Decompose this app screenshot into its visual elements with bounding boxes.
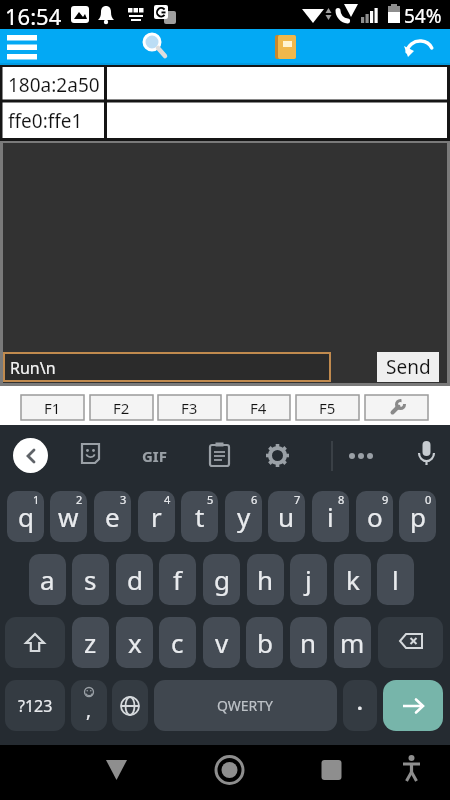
staticText: i xyxy=(327,499,334,534)
button[interactable]: d xyxy=(116,554,153,605)
button[interactable]: e xyxy=(94,491,131,542)
button[interactable]: a xyxy=(29,554,66,605)
button[interactable]: m xyxy=(334,617,371,668)
staticText: g xyxy=(214,562,230,597)
staticText: n xyxy=(300,625,317,660)
button[interactable]: j xyxy=(290,554,327,605)
button[interactable] xyxy=(365,395,428,420)
button[interactable] xyxy=(309,746,354,791)
staticText: , xyxy=(86,697,92,723)
button[interactable]: ?123 xyxy=(5,680,65,731)
staticText: q xyxy=(18,499,34,534)
staticText: j xyxy=(305,562,312,597)
staticText: x xyxy=(128,625,142,660)
button[interactable] xyxy=(410,437,443,470)
button[interactable] xyxy=(94,746,139,791)
button[interactable]: l xyxy=(377,554,414,605)
button[interactable]: Send xyxy=(377,352,439,382)
staticText: QWERTY xyxy=(217,696,274,715)
button[interactable]: h xyxy=(247,554,284,605)
button[interactable]: t xyxy=(181,491,218,542)
button[interactable]: F1 xyxy=(21,395,84,420)
staticText: 5 xyxy=(207,492,214,507)
staticText: 0 xyxy=(425,492,432,507)
button[interactable]: x xyxy=(116,617,153,668)
staticText: . xyxy=(357,689,363,716)
staticText: t xyxy=(195,499,205,534)
button[interactable]: QWERTY xyxy=(154,680,337,731)
staticText: y xyxy=(237,499,251,534)
button[interactable]: q xyxy=(7,491,44,542)
button[interactable] xyxy=(344,439,377,472)
button[interactable]: F2 xyxy=(90,395,153,420)
button[interactable]: o xyxy=(356,491,393,542)
staticText: ?123 xyxy=(18,695,53,717)
staticText: 16:54 xyxy=(5,1,62,30)
staticText: o xyxy=(367,499,383,534)
button[interactable]: Run\n xyxy=(4,353,330,381)
button[interactable]: c xyxy=(159,617,196,668)
button[interactable] xyxy=(13,438,48,473)
staticText: F5 xyxy=(319,398,336,418)
staticText: b xyxy=(257,625,273,660)
button[interactable]: w xyxy=(50,491,87,542)
button[interactable] xyxy=(74,439,107,472)
button[interactable]: p xyxy=(399,491,436,542)
button[interactable] xyxy=(203,439,236,472)
button[interactable]: F5 xyxy=(296,395,359,420)
button[interactable]: v xyxy=(203,617,240,668)
button[interactable] xyxy=(378,617,443,668)
button[interactable]: g xyxy=(203,554,240,605)
staticText: F2 xyxy=(113,398,130,418)
staticText: F4 xyxy=(250,398,267,418)
staticText: 3 xyxy=(120,492,127,507)
staticText: 9 xyxy=(382,492,389,507)
staticText: r xyxy=(151,499,162,534)
button[interactable]: F4 xyxy=(227,395,290,420)
button[interactable]: u xyxy=(268,491,305,542)
button[interactable]: z xyxy=(72,617,109,668)
staticText: s xyxy=(84,562,97,597)
button[interactable]: y xyxy=(225,491,262,542)
button[interactable]: k xyxy=(334,554,371,605)
button[interactable]: f xyxy=(159,554,196,605)
staticText: c xyxy=(171,625,184,660)
button[interactable]: , xyxy=(71,680,107,731)
staticText: 54% xyxy=(404,3,442,29)
button[interactable] xyxy=(264,29,308,65)
staticText: k xyxy=(346,562,360,597)
button[interactable] xyxy=(112,680,148,731)
button[interactable] xyxy=(383,680,443,731)
button[interactable] xyxy=(131,29,175,65)
button[interactable] xyxy=(261,439,294,472)
staticText: f xyxy=(173,562,182,597)
button[interactable] xyxy=(398,29,446,65)
staticText: u xyxy=(278,499,295,534)
staticText: 4 xyxy=(164,492,171,507)
staticText: 2 xyxy=(76,492,83,507)
staticText: 7 xyxy=(294,492,301,507)
button[interactable]: n xyxy=(290,617,327,668)
button[interactable]: r xyxy=(138,491,175,542)
staticText: p xyxy=(410,499,426,534)
button[interactable]: s xyxy=(72,554,109,605)
staticText: d xyxy=(127,562,143,597)
button[interactable] xyxy=(389,746,434,791)
staticText: Run\n xyxy=(10,357,56,379)
button[interactable]: F3 xyxy=(158,395,221,420)
button[interactable]: i xyxy=(312,491,349,542)
staticText: 180a:2a50 xyxy=(8,72,100,98)
staticText: 1 xyxy=(33,492,40,507)
button[interactable]: . xyxy=(343,680,377,731)
button[interactable] xyxy=(207,746,252,791)
staticText: e xyxy=(105,499,120,534)
staticText: h xyxy=(257,562,274,597)
button[interactable] xyxy=(0,29,44,65)
staticText: GIF xyxy=(142,446,167,466)
staticText: z xyxy=(84,625,97,660)
button[interactable] xyxy=(5,617,65,668)
button[interactable]: b xyxy=(246,617,283,668)
button[interactable]: GIF xyxy=(136,439,172,472)
staticText: a xyxy=(40,562,55,597)
staticText: 6 xyxy=(251,492,258,507)
